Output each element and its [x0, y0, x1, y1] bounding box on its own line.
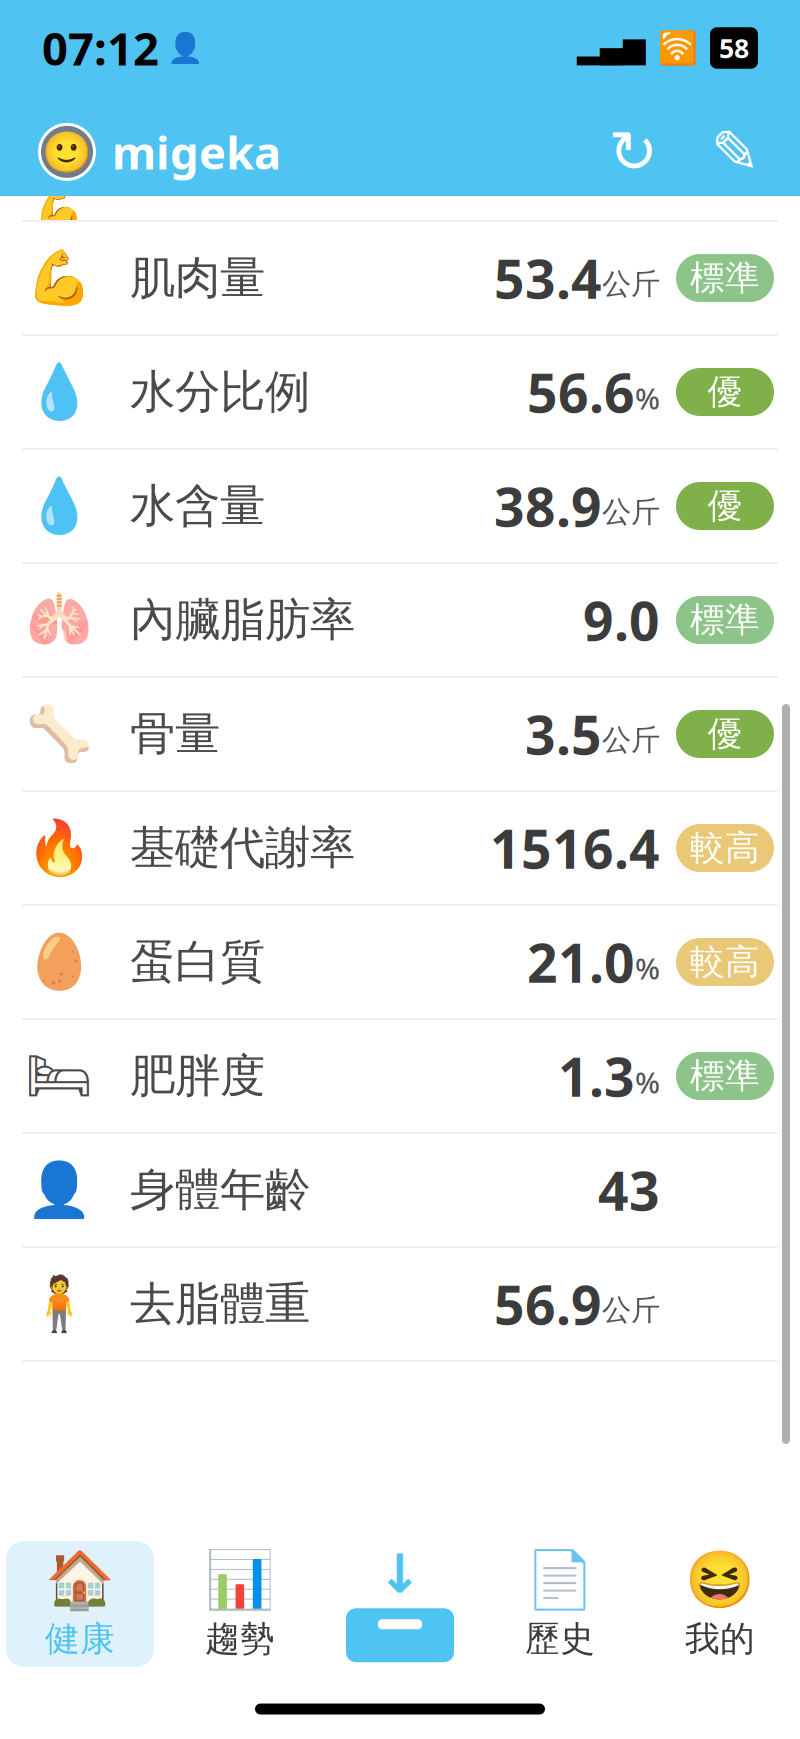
staticText: ✎	[710, 119, 759, 185]
staticText: 9.0	[583, 585, 660, 655]
staticText: 🥚	[26, 931, 92, 992]
staticText: 🏠	[45, 1548, 115, 1612]
staticText: 🛏	[25, 1045, 93, 1106]
staticText: 👤	[26, 1159, 92, 1220]
button[interactable]: 🧍	[0, 1248, 800, 1360]
button[interactable]: 🥚	[0, 906, 800, 1018]
staticText: 公斤	[602, 266, 660, 302]
staticText: 身體年齡	[130, 1162, 310, 1218]
staticText: 標準	[690, 1055, 760, 1097]
staticText: 👤	[167, 31, 204, 65]
button[interactable]: Edit	[708, 125, 762, 179]
staticText: 公斤	[602, 1292, 660, 1328]
staticText: 21.0	[527, 927, 635, 997]
staticText: %	[635, 378, 660, 417]
staticText: 07:12	[42, 18, 159, 78]
button[interactable]: 🏠	[0, 1541, 160, 1667]
staticText: 較高	[690, 941, 760, 983]
staticText: 趨勢	[205, 1618, 275, 1660]
staticText: 內臟脂肪率	[130, 592, 355, 648]
staticText: 56.6	[527, 357, 635, 427]
staticText: 優	[707, 485, 742, 527]
staticText: 肥胖度	[130, 1048, 265, 1104]
staticText: 較高	[690, 827, 760, 869]
staticText: 📊	[205, 1548, 275, 1612]
button[interactable]: 🫁	[0, 564, 800, 676]
staticText: 優	[707, 371, 742, 413]
button[interactable]: 💧	[0, 336, 800, 448]
staticText: 公斤	[602, 494, 660, 530]
button[interactable]: Measure	[320, 1541, 480, 1667]
staticText: ↻	[608, 119, 657, 185]
staticText: 蛋白質	[130, 934, 265, 990]
staticText: 💪	[34, 185, 84, 231]
staticText: migeka	[112, 122, 281, 182]
staticText: 1516.4	[490, 813, 660, 883]
button[interactable]: 🔥	[0, 792, 800, 904]
button[interactable]: 🙂	[38, 122, 281, 182]
staticText: 歷史	[525, 1618, 595, 1660]
staticText: 公斤	[602, 722, 660, 758]
staticText: 🫁	[26, 589, 92, 650]
staticText: %	[635, 1062, 660, 1101]
staticText: 💧	[26, 475, 92, 536]
staticText: 水分比例	[130, 364, 310, 420]
staticText: %	[635, 948, 660, 987]
staticText: 💧	[26, 361, 92, 422]
staticText: 標準	[690, 257, 760, 299]
staticText: 去脂體重	[130, 1276, 310, 1332]
staticText: 骨量	[130, 706, 220, 762]
button[interactable]: 🛏	[0, 1020, 800, 1132]
staticText: 基礎代謝率	[130, 820, 355, 876]
staticText: 水含量	[130, 478, 265, 534]
button[interactable]: 🦴	[0, 678, 800, 790]
staticText: 健康	[45, 1618, 115, 1660]
staticText: 56.9	[494, 1269, 602, 1339]
staticText: 38.9	[494, 471, 602, 541]
staticText: 53.4	[494, 243, 602, 313]
button[interactable]: 📄	[480, 1541, 640, 1667]
staticText: 肌肉量	[130, 250, 265, 306]
staticText: 優	[707, 713, 742, 755]
staticText: 43	[598, 1155, 660, 1225]
staticText: 🔥	[26, 817, 92, 878]
staticText: ▂▄▆	[577, 31, 646, 65]
staticText: 🛜	[658, 30, 698, 66]
staticText: 📄	[525, 1548, 595, 1612]
staticText: ↓	[377, 1544, 422, 1604]
staticText: 🧍	[26, 1273, 92, 1334]
button[interactable]: 💪	[0, 222, 800, 334]
staticText: 🦴	[26, 703, 92, 764]
button[interactable]: 💧	[0, 450, 800, 562]
staticText: 💪	[26, 247, 92, 308]
staticText: 我的	[685, 1618, 755, 1660]
staticText: 1.3	[558, 1041, 635, 1111]
staticText: 3.5	[525, 699, 602, 769]
button[interactable]: 😆	[640, 1541, 800, 1667]
button[interactable]: 👤	[0, 1134, 800, 1246]
staticText: 標準	[690, 599, 760, 641]
staticText: 58	[719, 30, 749, 66]
staticText: 😆	[685, 1548, 755, 1612]
staticText: 🙂	[42, 129, 92, 175]
button[interactable]: Sync	[606, 125, 660, 179]
button[interactable]: 📊	[160, 1541, 320, 1667]
